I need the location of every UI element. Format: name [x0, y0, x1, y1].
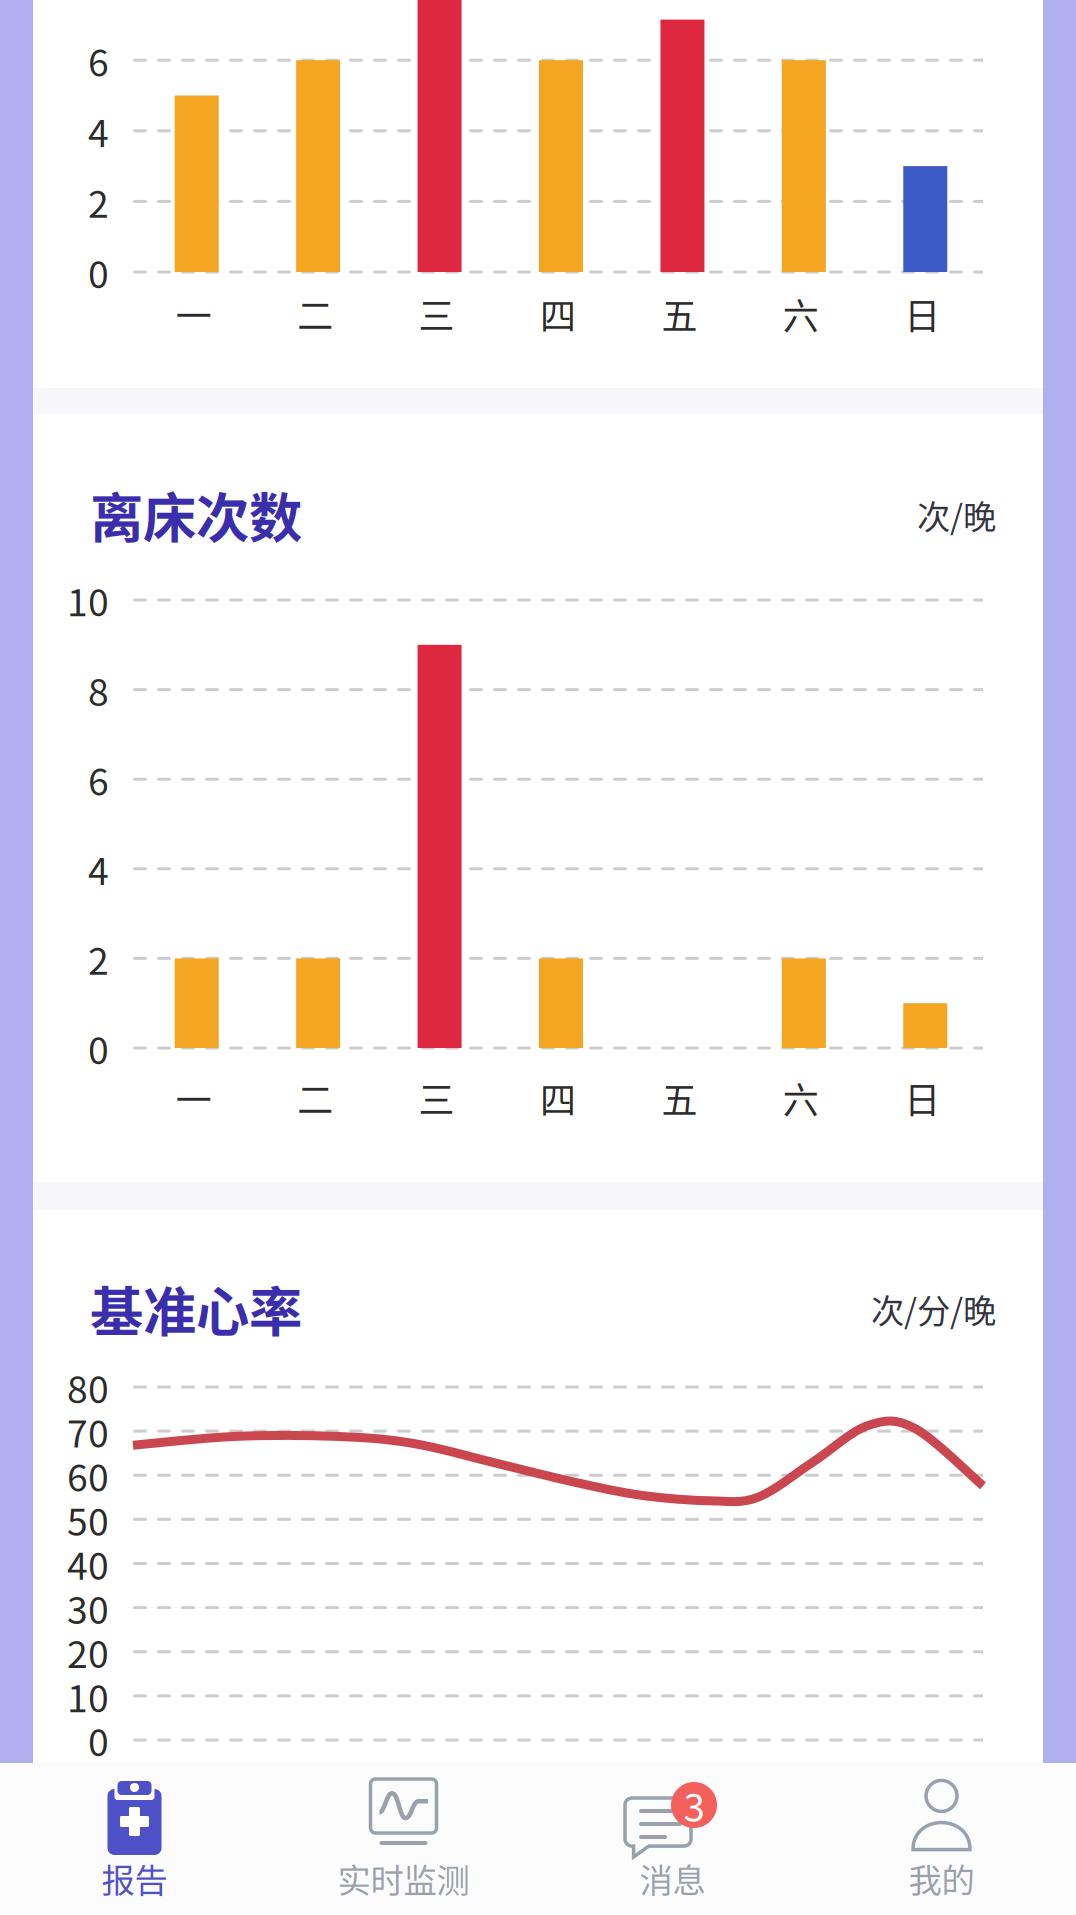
staticText: 0	[88, 1713, 109, 1767]
staticText: 60	[67, 1448, 109, 1502]
staticText: 离床次数	[90, 476, 302, 553]
staticText: 四	[540, 288, 576, 340]
staticText: 基准心率	[90, 1270, 302, 1347]
staticText: 三	[419, 1072, 455, 1124]
staticText: 六	[783, 288, 819, 340]
staticText: 五	[661, 1072, 697, 1124]
button[interactable]: 报告	[0, 1763, 269, 1915]
staticText: 10	[67, 1669, 109, 1723]
staticText: 五	[661, 288, 697, 340]
staticText: 一	[176, 1072, 212, 1124]
staticText: 30	[67, 1581, 109, 1635]
staticText: 三	[419, 288, 455, 340]
staticText: 一	[176, 288, 212, 340]
staticText: 80	[67, 1360, 109, 1414]
staticText: 0	[88, 1021, 109, 1075]
button[interactable]: 我的	[807, 1763, 1076, 1915]
staticText: 0	[88, 245, 109, 299]
staticText: 6	[88, 33, 109, 87]
staticText: 日	[904, 288, 940, 340]
staticText: 2	[88, 174, 109, 228]
staticText: 四	[540, 1072, 576, 1124]
staticText: 20	[67, 1625, 109, 1679]
staticText: 4	[88, 842, 109, 896]
staticText: 3	[683, 1777, 704, 1833]
staticText: 六	[783, 1072, 819, 1124]
staticText: 6	[88, 752, 109, 806]
button[interactable]: 实时监测	[269, 1763, 538, 1915]
button[interactable]: 3	[538, 1763, 807, 1915]
staticText: 70	[67, 1404, 109, 1458]
staticText: 二	[297, 1072, 333, 1124]
staticText: 消息	[639, 1854, 705, 1902]
staticText: 次/晚	[917, 490, 996, 539]
staticText: 40	[67, 1536, 109, 1591]
staticText: 二	[297, 288, 333, 340]
staticText: 10	[67, 573, 109, 627]
staticText: 实时监测	[337, 1854, 469, 1902]
staticText: 8	[88, 663, 109, 717]
staticText: 2	[88, 931, 109, 985]
staticText: 4	[88, 104, 109, 158]
staticText: 我的	[908, 1854, 974, 1902]
staticText: 50	[67, 1492, 109, 1546]
staticText: 报告	[101, 1854, 167, 1902]
staticText: 次/分/晚	[871, 1284, 996, 1333]
staticText: 日	[904, 1072, 940, 1124]
